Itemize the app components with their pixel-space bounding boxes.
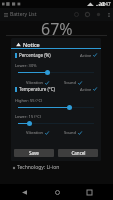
staticText: Vibration bbox=[26, 80, 44, 85]
button[interactable]: Search bbox=[71, 9, 82, 20]
button[interactable]: Lower: 15 (°C) bbox=[27, 121, 32, 126]
button[interactable]: Vibration bbox=[26, 80, 49, 85]
staticText: Save bbox=[29, 150, 39, 156]
staticText: 67% bbox=[41, 18, 73, 40]
staticText: Sound bbox=[64, 130, 77, 135]
button[interactable]: Lower: 30% bbox=[45, 70, 50, 75]
staticText: Battery List bbox=[10, 11, 37, 18]
button[interactable]: Settings bbox=[93, 9, 104, 20]
staticText: 10:47 bbox=[99, 1, 111, 7]
button[interactable]: Back bbox=[16, 184, 32, 200]
button[interactable]: Higher: 55 (°C) bbox=[67, 105, 72, 110]
button[interactable]: Vibration bbox=[26, 130, 49, 135]
button[interactable]: More options bbox=[104, 10, 113, 19]
staticText: Notice bbox=[23, 41, 40, 48]
button[interactable]: Save bbox=[14, 149, 54, 157]
staticText: Temperature (°C) bbox=[19, 86, 55, 92]
staticText: Lower: 30% bbox=[15, 63, 37, 68]
staticText: Lower: 15 (°C) bbox=[15, 114, 41, 119]
staticText: Active bbox=[80, 53, 92, 58]
button[interactable]: Home bbox=[49, 184, 65, 200]
button[interactable]: Recent apps bbox=[81, 184, 97, 200]
staticText: Technology: Li-ion bbox=[17, 164, 60, 171]
button[interactable]: Cancel bbox=[58, 149, 98, 157]
button[interactable]: Refresh bbox=[82, 9, 93, 20]
button[interactable]: Sound bbox=[64, 80, 82, 85]
staticText: Cancel bbox=[71, 150, 86, 156]
staticText: Higher: 55 (°C) bbox=[15, 98, 43, 103]
staticText: Sound bbox=[64, 80, 77, 85]
button[interactable]: Open navigation drawer bbox=[1, 10, 10, 19]
button[interactable]: Sound bbox=[64, 130, 82, 135]
staticText: Vibration bbox=[26, 130, 44, 135]
staticText: Percentage (%) bbox=[19, 52, 51, 58]
staticText: Active bbox=[80, 87, 92, 92]
